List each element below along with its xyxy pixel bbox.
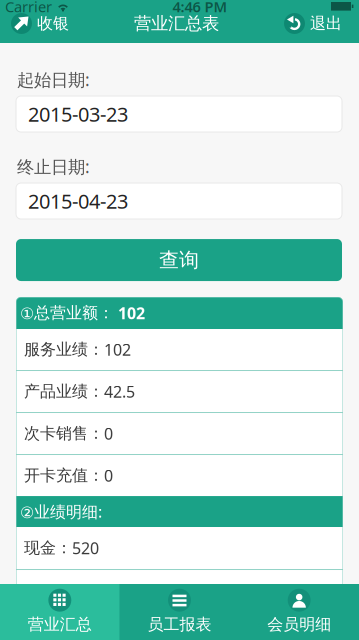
staticText: Carrier	[5, 0, 52, 16]
staticText: 营业汇总	[28, 615, 92, 634]
staticText: 520	[72, 537, 99, 559]
staticText: 会员明细	[267, 615, 331, 634]
staticText: 员工报表	[147, 615, 211, 634]
staticText: 42.5	[104, 381, 135, 402]
staticText: 2015-03-23	[28, 101, 128, 127]
button[interactable]: 查询	[0, 239, 359, 281]
button[interactable]: 收银	[0, 13, 79, 34]
button[interactable]: 退出	[274, 13, 359, 34]
staticText: 102	[118, 302, 145, 324]
button[interactable]: 2015-04-23	[0, 183, 359, 219]
staticText: 终止日期:	[17, 155, 90, 178]
button[interactable]: 员工报表	[120, 584, 239, 640]
staticText: ①总营业额：	[20, 303, 114, 323]
staticText: 4:46 PM	[172, 0, 227, 16]
staticText: 0	[104, 465, 113, 486]
staticText: 起始日期:	[17, 68, 90, 91]
staticText: 次卡销售：	[24, 424, 104, 443]
button[interactable]: 2015-03-23	[0, 96, 359, 132]
staticText: 查询	[159, 248, 199, 272]
staticText: 0	[104, 423, 113, 444]
staticText: 产品业绩：	[24, 382, 104, 401]
staticText: ②业绩明细:	[20, 501, 102, 522]
staticText: 服务业绩：	[24, 340, 104, 359]
staticText: 2015-04-23	[28, 188, 128, 214]
staticText: 102	[104, 339, 131, 360]
staticText: 现金：	[24, 538, 72, 558]
staticText: 营业汇总表	[134, 13, 219, 34]
staticText: 开卡充值：	[24, 466, 104, 485]
staticText: 收银	[37, 14, 69, 33]
button[interactable]: 会员明细	[239, 584, 359, 640]
staticText: 退出	[310, 14, 342, 33]
button[interactable]: 营业汇总	[0, 584, 120, 640]
